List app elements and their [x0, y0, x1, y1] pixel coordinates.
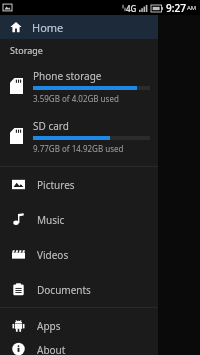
staticText: Pictures — [37, 178, 75, 192]
button[interactable]: Pictures — [0, 167, 158, 202]
button[interactable]: Music — [0, 202, 158, 237]
staticText: AM — [187, 4, 197, 12]
button[interactable]: Videos — [0, 237, 158, 272]
staticText: About — [37, 343, 66, 355]
staticText: SD card — [33, 119, 69, 133]
staticText: Apps — [37, 319, 61, 333]
staticText: 4G — [126, 3, 137, 14]
button[interactable]: Apps — [0, 308, 158, 343]
staticText: Videos — [37, 248, 69, 262]
button[interactable]: SD card — [0, 111, 158, 161]
button[interactable]: About — [0, 343, 158, 355]
staticText: 9.77GB of 14.92GB used — [33, 143, 124, 154]
button[interactable]: Documents — [0, 272, 158, 307]
button[interactable]: Home — [0, 15, 158, 39]
staticText: Home — [32, 20, 64, 35]
staticText: Phone storage — [33, 69, 102, 83]
staticText: Music — [37, 213, 65, 227]
staticText: Storage — [10, 44, 43, 56]
staticText: 3.59GB of 4.02GB used — [33, 93, 119, 104]
staticText: 9:27 — [166, 1, 186, 15]
staticText: Documents — [37, 283, 91, 297]
button[interactable]: Phone storage — [0, 61, 158, 111]
